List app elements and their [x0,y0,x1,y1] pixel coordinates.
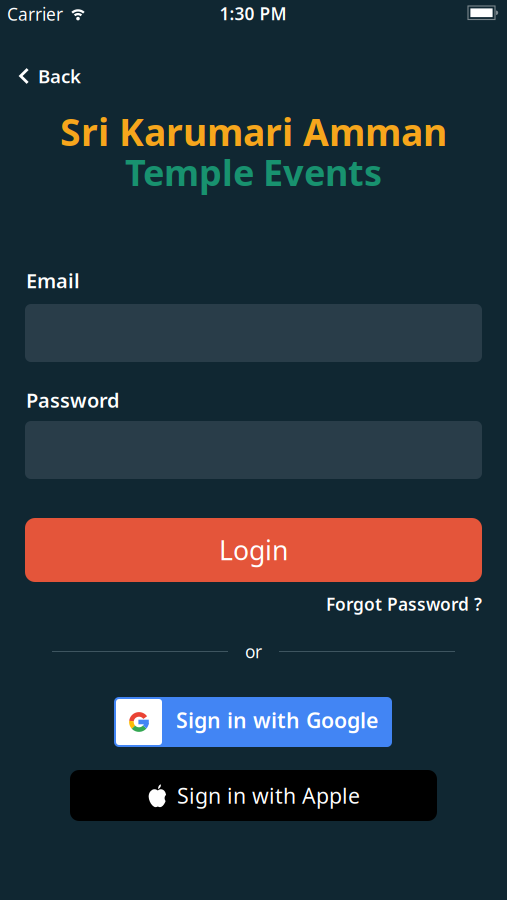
staticText: Forgot Password ? [326,592,482,615]
button[interactable]: Forgot Password ? [326,592,482,615]
staticText: Temple Events [125,148,382,196]
staticText: Email [26,267,80,294]
staticText: Password [26,387,120,413]
button[interactable]: Sign in with Apple [70,770,437,821]
staticText: or [245,640,262,663]
button[interactable]: Sign in with Google [114,697,392,747]
button[interactable]: Login [25,518,482,582]
staticText: Carrier [7,2,63,25]
button[interactable]: Back [19,64,81,88]
staticText: Login [219,532,288,568]
staticText: Sri Karumari Amman [60,107,447,156]
staticText: Back [38,64,81,88]
staticText: 1:30 PM [219,2,286,25]
staticText: Sign in with Google [176,706,378,734]
staticText: Sign in with Apple [177,781,360,810]
